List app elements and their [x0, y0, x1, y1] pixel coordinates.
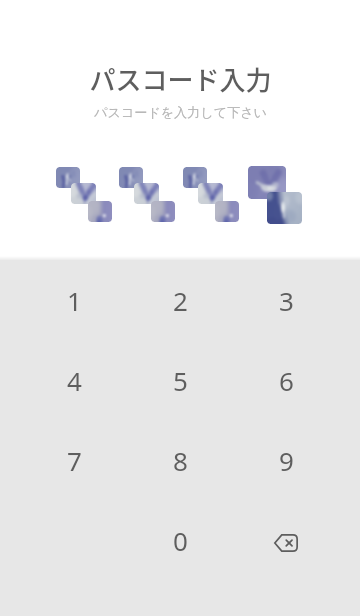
- staticText: 3: [279, 283, 294, 318]
- other: Backspace: [274, 534, 298, 552]
- staticText: 6: [279, 363, 294, 398]
- button[interactable]: 0: [127, 500, 233, 580]
- button[interactable]: Backspace: [233, 500, 339, 580]
- staticText: パスコード入力: [89, 60, 272, 98]
- staticText: 5: [173, 363, 188, 398]
- staticText: 8: [173, 443, 188, 478]
- staticText: 7: [67, 443, 82, 478]
- button[interactable]: 1: [21, 260, 127, 340]
- staticText: 9: [279, 443, 294, 478]
- button[interactable]: 9: [233, 420, 339, 500]
- staticText: 2: [173, 283, 188, 318]
- staticText: 1: [67, 283, 82, 318]
- button[interactable]: 4: [21, 340, 127, 420]
- button[interactable]: 2: [127, 260, 233, 340]
- button[interactable]: 8: [127, 420, 233, 500]
- button[interactable]: 3: [233, 260, 339, 340]
- staticText: 4: [67, 363, 82, 398]
- button[interactable]: 5: [127, 340, 233, 420]
- staticText: パスコードを入力して下さい: [94, 104, 267, 121]
- button[interactable]: 7: [21, 420, 127, 500]
- button[interactable]: 6: [233, 340, 339, 420]
- staticText: 0: [173, 523, 188, 558]
